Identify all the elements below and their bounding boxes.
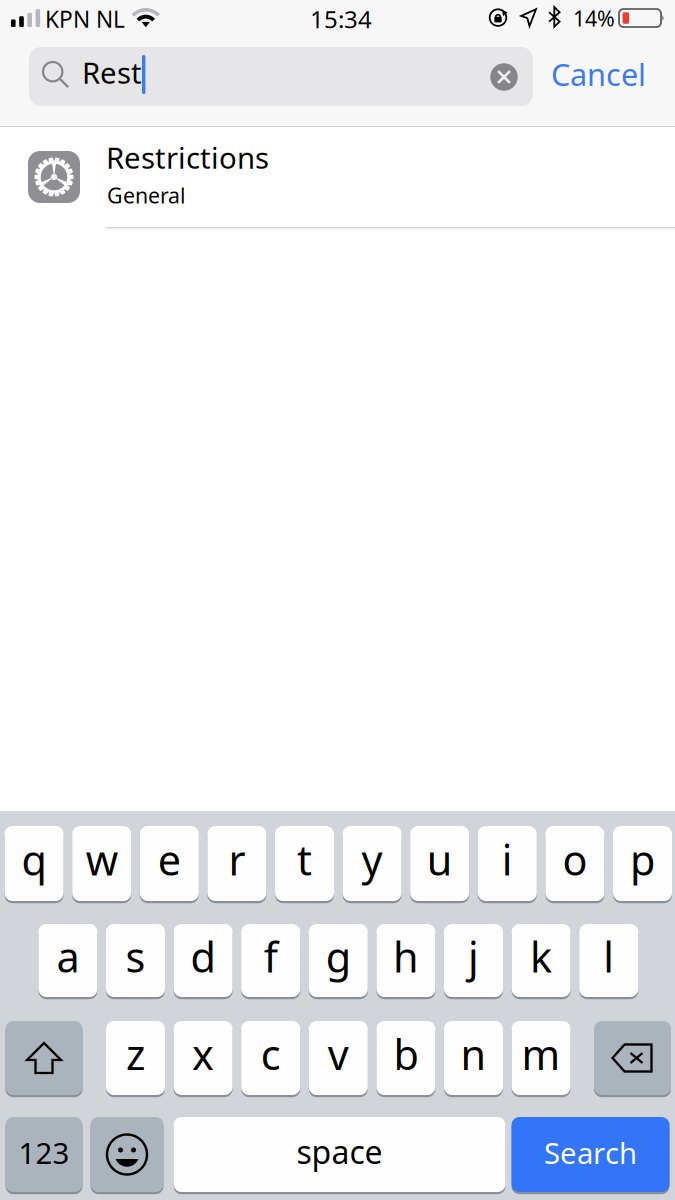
button[interactable]: f [241, 924, 300, 997]
button[interactable]: b [376, 1021, 435, 1095]
button[interactable]: n [444, 1021, 503, 1095]
staticText: i [502, 832, 513, 887]
staticText: g [326, 929, 351, 984]
button[interactable]: o [545, 826, 604, 901]
staticText: s [125, 929, 145, 984]
button[interactable]: w [72, 826, 131, 901]
staticText: 14% [573, 4, 615, 32]
staticText: u [427, 832, 453, 887]
button[interactable]: t [275, 826, 334, 901]
button[interactable]: space [173, 1117, 505, 1192]
button[interactable]: Restrictions [0, 127, 675, 228]
staticText: z [126, 1027, 145, 1081]
staticText: k [530, 929, 552, 984]
button[interactable]: d [174, 924, 233, 997]
staticText: q [22, 832, 47, 887]
staticText: b [393, 1027, 418, 1081]
staticText: o [562, 832, 587, 887]
button[interactable]: i [478, 826, 537, 901]
button[interactable]: u [410, 826, 469, 901]
staticText: n [460, 1027, 486, 1081]
button[interactable]: x [174, 1021, 233, 1095]
staticText: l [603, 929, 614, 984]
staticText: f [264, 929, 278, 984]
button[interactable]: Emoji [90, 1117, 163, 1192]
button[interactable]: r [207, 826, 266, 901]
button[interactable]: Delete [594, 1021, 671, 1095]
staticText: y [362, 832, 383, 887]
button[interactable]: v [309, 1021, 368, 1095]
button[interactable]: p [613, 826, 672, 901]
button[interactable]: m [512, 1021, 571, 1095]
staticText: v [328, 1027, 349, 1081]
button[interactable]: h [376, 924, 435, 997]
staticText: Rest [82, 53, 142, 92]
button[interactable]: Cancel [538, 44, 659, 104]
button[interactable]: e [140, 826, 199, 901]
staticText: General [107, 181, 186, 209]
button[interactable]: y [343, 826, 402, 901]
staticText: x [192, 1027, 214, 1081]
staticText: 123 [18, 1133, 69, 1172]
staticText: space [296, 1130, 382, 1173]
staticText: d [191, 929, 216, 984]
button[interactable]: a [38, 924, 97, 997]
staticText: r [228, 832, 245, 887]
staticText: Cancel [551, 54, 646, 94]
button[interactable]: g [309, 924, 368, 997]
button[interactable]: Clear text [482, 55, 526, 99]
staticText: Restrictions [106, 138, 269, 177]
button[interactable]: Search [511, 1117, 669, 1192]
button[interactable]: c [241, 1021, 300, 1095]
button[interactable]: j [444, 924, 503, 997]
staticText: Search [544, 1133, 637, 1172]
staticText: c [261, 1027, 281, 1081]
button[interactable]: k [512, 924, 571, 997]
button[interactable]: s [106, 924, 165, 997]
staticText: KPN NL [45, 4, 125, 34]
staticText: p [630, 832, 655, 887]
button[interactable]: 123 [5, 1117, 82, 1192]
staticText: h [393, 929, 419, 984]
staticText: j [468, 929, 479, 984]
button[interactable]: Shift [5, 1021, 82, 1095]
staticText: 15:34 [310, 3, 372, 35]
staticText: m [522, 1027, 561, 1081]
button[interactable]: q [5, 826, 64, 901]
staticText: e [158, 832, 181, 887]
staticText: a [56, 929, 79, 984]
button[interactable]: z [106, 1021, 165, 1095]
staticText: t [297, 832, 312, 887]
button[interactable]: l [579, 924, 638, 997]
staticText: w [86, 832, 118, 887]
